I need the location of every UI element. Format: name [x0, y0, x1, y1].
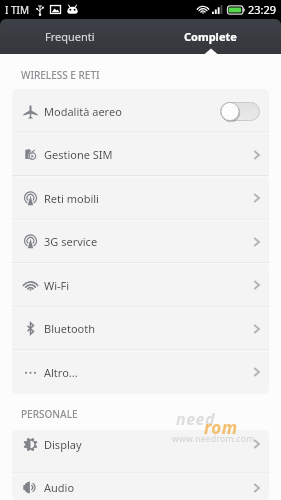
button[interactable]: Modalità aereo toggle, off [220, 102, 260, 121]
button[interactable]: Bluetooth [12, 307, 269, 350]
staticText: Audio [44, 480, 75, 495]
staticText: PERSONALE [21, 407, 78, 420]
staticText: Frequenti [45, 29, 95, 44]
button[interactable]: Gestione SIM [12, 133, 269, 176]
staticText: Modalità aereo [44, 104, 122, 119]
staticText: Bluetooth [44, 321, 96, 336]
staticText: I TIM [5, 3, 30, 17]
button[interactable]: Frequenti [0, 19, 140, 54]
staticText: 23:29 [248, 2, 277, 17]
staticText: rom [204, 416, 238, 439]
button[interactable]: Complete [140, 19, 281, 54]
staticText: Reti mobili [44, 191, 99, 206]
button[interactable]: 3G service [12, 220, 269, 263]
button[interactable]: Altro... [12, 350, 269, 394]
button[interactable]: Wi-Fi [12, 263, 269, 307]
staticText: Altro... [44, 365, 78, 380]
staticText: WIRELESS E RETI [21, 68, 100, 81]
staticText: Complete [184, 29, 237, 44]
staticText: 3G service [44, 234, 98, 249]
staticText: need [176, 408, 215, 430]
staticText: www.needrom.com [172, 433, 255, 445]
staticText: Gestione SIM [44, 147, 113, 162]
staticText: Display [44, 437, 82, 452]
button[interactable]: Reti mobili [12, 176, 269, 220]
staticText: Wi-Fi [44, 278, 70, 293]
button[interactable]: Modalità aereo [12, 89, 269, 133]
button[interactable]: Display [12, 430, 269, 466]
button[interactable]: Audio [12, 466, 269, 500]
